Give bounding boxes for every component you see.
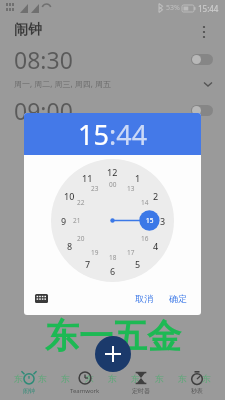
staticText: 53% <box>166 3 180 13</box>
staticText: 4 <box>153 240 159 252</box>
staticText: 取消 <box>135 293 153 304</box>
staticText: 22 <box>77 198 85 207</box>
staticText: 8 <box>67 240 73 252</box>
staticText: 闹钟 <box>23 387 35 395</box>
button[interactable]: Toggle alarm <box>191 105 213 116</box>
staticText: 09:00 <box>14 95 73 126</box>
staticText: 17 <box>127 248 135 257</box>
staticText: 东 <box>131 373 140 384</box>
button[interactable]: 闹钟 <box>0 366 57 400</box>
staticText: 2 <box>153 190 159 202</box>
staticText: 21 <box>73 216 81 225</box>
staticText: 6 <box>110 265 116 277</box>
staticText: 东 <box>85 373 94 384</box>
staticText: 东 <box>178 373 187 384</box>
button[interactable]: Add alarm <box>95 336 131 372</box>
staticText: 9 <box>61 215 67 227</box>
staticText: 周一, 周二, 周三, 周四, 周五 <box>14 78 111 89</box>
staticText: 定时器 <box>132 387 150 395</box>
staticText: 1 <box>135 172 141 184</box>
staticText: 闹钟 <box>14 21 42 39</box>
button[interactable]: 15 <box>24 113 201 155</box>
button[interactable]: 08:30 <box>0 44 225 89</box>
button[interactable]: 秒表 <box>169 366 225 400</box>
button[interactable]: Toggle alarm <box>191 54 213 65</box>
staticText: 东 <box>38 373 47 384</box>
staticText: 11 <box>82 172 93 184</box>
staticText: 东一五金 <box>45 315 181 358</box>
button[interactable]: 确定 <box>163 290 193 307</box>
button[interactable]: 取消 <box>129 290 159 307</box>
staticText: 19 <box>91 248 99 257</box>
button[interactable]: 定时器 <box>113 366 169 400</box>
staticText: 东 <box>14 373 23 384</box>
staticText: 7 <box>85 258 91 270</box>
staticText: 秒表 <box>191 387 203 395</box>
staticText: 东 <box>202 373 211 384</box>
staticText: 15 <box>78 116 109 153</box>
staticText: 15:44 <box>198 3 219 14</box>
button[interactable]: More options <box>193 19 215 41</box>
staticText: 12 <box>107 166 118 178</box>
staticText: 16 <box>141 234 149 243</box>
staticText: 15 <box>146 216 154 225</box>
staticText: 确定 <box>169 293 187 304</box>
staticText: 5 <box>135 258 141 270</box>
button[interactable]: 09:00 <box>0 95 225 126</box>
button[interactable]: Teamwork <box>57 366 113 400</box>
staticText: 18 <box>109 253 117 262</box>
button[interactable]: Switch to keyboard input <box>32 289 50 307</box>
staticText: 00 <box>109 180 117 189</box>
staticText: 东 <box>108 373 117 384</box>
staticText: 23 <box>91 184 99 193</box>
staticText: 14 <box>141 198 149 207</box>
staticText: 13 <box>127 184 135 193</box>
staticText: 10 <box>64 190 75 202</box>
staticText: 20 <box>77 234 85 243</box>
staticText: 08:30 <box>14 44 73 75</box>
staticText: 东 <box>61 373 70 384</box>
staticText: 东 <box>155 373 164 384</box>
staticText: Teamwork <box>70 387 100 395</box>
staticText: :44 <box>109 116 148 153</box>
staticText: 3 <box>160 215 166 227</box>
